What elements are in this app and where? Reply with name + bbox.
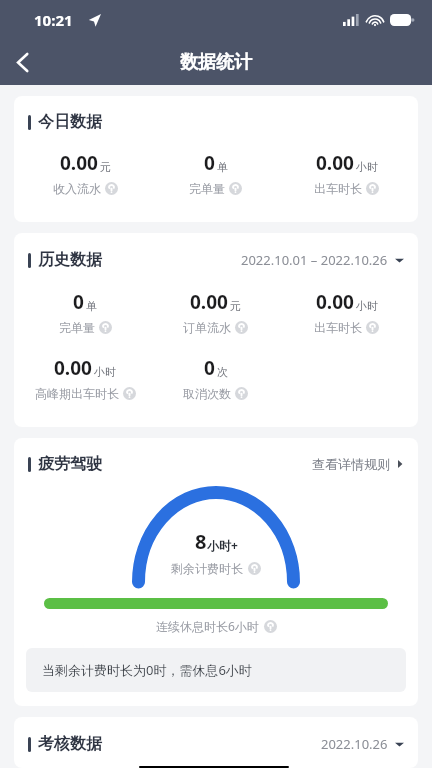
staticText: 次 xyxy=(217,365,228,379)
staticText: 单 xyxy=(217,160,228,174)
staticText: 0.00 xyxy=(190,289,228,315)
staticText: 元 xyxy=(100,160,111,174)
staticText: 0 xyxy=(204,355,215,381)
staticText: 小时 xyxy=(356,299,378,313)
staticText: 订单流水 xyxy=(183,320,231,335)
staticText: 今日数据 xyxy=(38,112,102,132)
staticText: 历史数据 xyxy=(38,250,102,270)
staticText: 0 xyxy=(73,289,84,315)
staticText: 出车时长 xyxy=(314,320,362,335)
staticText: 单 xyxy=(86,299,97,313)
staticText: 2022.10.26 xyxy=(321,735,388,753)
staticText: 10:21 xyxy=(34,10,73,30)
staticText: 取消次数 xyxy=(183,386,231,401)
staticText: 0 xyxy=(204,150,215,176)
staticText: 数据统计 xyxy=(180,51,252,74)
staticText: 0.00 xyxy=(60,150,98,176)
staticText: 元 xyxy=(230,299,241,313)
staticText: 出车时长 xyxy=(314,181,362,196)
staticText: 当剩余计费时长为0时，需休息6小时 xyxy=(42,661,252,679)
button[interactable]: 2022.10.01 – 2022.10.26 xyxy=(239,247,406,273)
staticText: 疲劳驾驶 xyxy=(38,454,102,474)
staticText: 0.00 xyxy=(316,289,354,315)
staticText: 高峰期出车时长 xyxy=(35,386,119,401)
button[interactable]: 查看详情规则 xyxy=(310,452,406,476)
staticText: 小时 xyxy=(94,365,116,379)
staticText: 2022.10.01 – 2022.10.26 xyxy=(241,251,388,269)
button[interactable]: Back xyxy=(0,40,46,85)
staticText: 完单量 xyxy=(189,181,225,196)
staticText: 剩余计费时长 xyxy=(171,561,243,576)
staticText: 考核数据 xyxy=(38,734,102,754)
staticText: 连续休息时长6小时 xyxy=(156,618,259,634)
staticText: 小时+ xyxy=(207,537,238,553)
staticText: 8 xyxy=(195,528,207,555)
staticText: 查看详情规则 xyxy=(312,456,390,472)
staticText: 完单量 xyxy=(59,320,95,335)
staticText: 收入流水 xyxy=(53,181,101,196)
button[interactable]: 2022.10.26 xyxy=(319,731,406,757)
staticText: 0.00 xyxy=(54,355,92,381)
staticText: 0.00 xyxy=(316,150,354,176)
staticText: 小时 xyxy=(356,160,378,174)
